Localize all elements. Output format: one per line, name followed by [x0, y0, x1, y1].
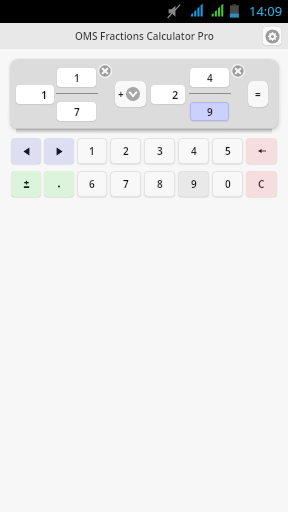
- button[interactable]: 1: [16, 85, 54, 104]
- staticText: 0: [225, 177, 231, 191]
- button[interactable]: 8: [144, 171, 175, 197]
- staticText: 9: [191, 177, 197, 191]
- other: Plus minus: [21, 179, 32, 190]
- button[interactable]: 9: [190, 102, 229, 121]
- button[interactable]: 4: [178, 138, 209, 164]
- button[interactable]: 4: [190, 68, 229, 87]
- staticText: 1: [89, 144, 95, 158]
- button[interactable]: 9: [178, 171, 209, 197]
- button[interactable]: Decimal point: [44, 171, 74, 197]
- staticText: OMS Fractions Calculator Pro: [75, 29, 214, 43]
- button[interactable]: 0: [212, 171, 243, 197]
- button[interactable]: 6: [77, 171, 107, 197]
- staticText: 1: [41, 87, 48, 102]
- button[interactable]: 1: [77, 138, 107, 164]
- button[interactable]: 1: [57, 68, 96, 87]
- other: Decimal point: [54, 179, 64, 189]
- button[interactable]: Operation plus: [115, 81, 146, 107]
- button[interactable]: 7: [110, 171, 141, 197]
- button[interactable]: 5: [212, 138, 243, 164]
- button[interactable]: Left: [11, 138, 41, 164]
- staticText: 2: [123, 144, 129, 158]
- other: Backspace: [258, 147, 266, 155]
- button[interactable]: C: [246, 171, 277, 197]
- button[interactable]: 7: [57, 102, 96, 121]
- staticText: +: [118, 87, 124, 101]
- button[interactable]: Settings: [263, 27, 281, 45]
- button[interactable]: 2: [110, 138, 141, 164]
- staticText: 6: [89, 177, 95, 191]
- button[interactable]: Plus minus: [11, 171, 41, 197]
- other: Right: [54, 146, 65, 157]
- button[interactable]: Clear: [98, 64, 112, 78]
- staticText: 9: [207, 105, 213, 119]
- staticText: 4: [207, 71, 213, 85]
- staticText: 7: [123, 177, 129, 191]
- staticText: =: [255, 87, 261, 101]
- staticText: C: [258, 177, 265, 191]
- button[interactable]: 2: [151, 85, 185, 104]
- staticText: 3: [157, 144, 163, 158]
- other: Left: [21, 146, 32, 157]
- staticText: 5: [225, 144, 231, 158]
- staticText: 2: [172, 87, 179, 102]
- staticText: 1: [74, 71, 80, 85]
- button[interactable]: =: [248, 81, 268, 107]
- button[interactable]: Clear: [231, 64, 245, 78]
- staticText: 4: [191, 144, 197, 158]
- button[interactable]: 3: [144, 138, 175, 164]
- staticText: 8: [157, 177, 163, 191]
- staticText: 14:09: [249, 2, 283, 20]
- button[interactable]: Right: [44, 138, 74, 164]
- staticText: 7: [74, 105, 80, 119]
- button[interactable]: Backspace: [246, 138, 277, 164]
